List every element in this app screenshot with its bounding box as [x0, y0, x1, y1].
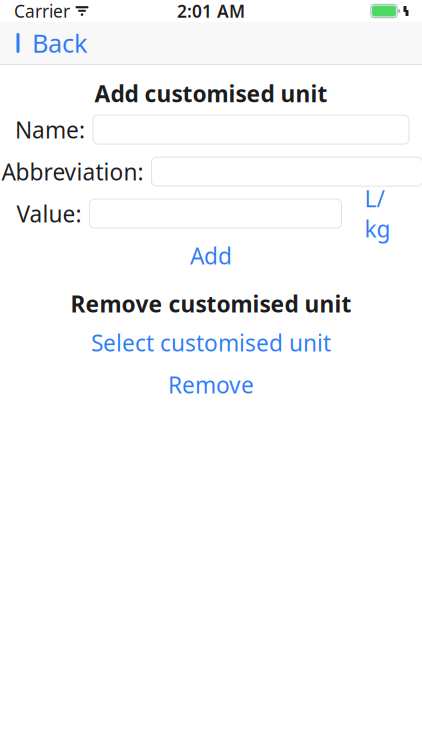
staticText: Add customised unit [94, 78, 327, 109]
staticText: L/kg [364, 183, 390, 244]
staticText: Remove [168, 370, 254, 400]
button[interactable]: Select customised unit [91, 327, 331, 359]
staticText: 2:01 AM [177, 0, 245, 22]
staticText: Remove customised unit [70, 289, 351, 319]
button[interactable]: Add [166, 241, 256, 271]
staticText: Name: [15, 115, 85, 145]
button[interactable]: Back [0, 22, 98, 64]
staticText: Add [190, 241, 232, 271]
staticText: Back [32, 26, 88, 60]
staticText: Abbreviation: [1, 157, 143, 187]
staticText: Value: [16, 199, 81, 229]
button[interactable]: L/kg [359, 199, 395, 229]
button[interactable]: Remove [151, 369, 271, 401]
staticText: Carrier [14, 0, 70, 22]
staticText: Select customised unit [91, 328, 331, 358]
